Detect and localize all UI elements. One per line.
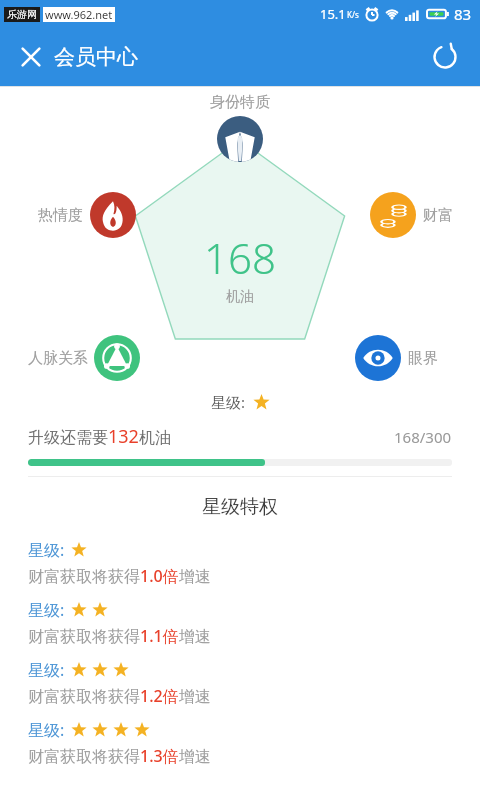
other: Close	[20, 46, 42, 68]
staticText: 星级特权	[202, 495, 278, 519]
button[interactable]: Close	[14, 38, 144, 76]
staticText: 身份特质	[210, 93, 270, 112]
button[interactable]: 星级:	[0, 597, 480, 657]
staticText: 星级:	[28, 599, 65, 621]
staticText: 财富获取将获得1.1倍增速	[28, 625, 211, 647]
button[interactable]: 星级:	[0, 657, 480, 717]
staticText: 星级:	[28, 719, 65, 741]
staticText: 眼界	[408, 349, 438, 368]
staticText: 人脉关系	[28, 349, 88, 368]
staticText: 机油	[226, 288, 254, 306]
staticText: 财富	[423, 206, 453, 225]
staticText: 15.1	[320, 5, 346, 23]
staticText: 168/300	[394, 427, 452, 447]
button[interactable]: Refresh	[426, 38, 464, 76]
staticText: 星级:	[28, 659, 65, 681]
staticText: 83	[454, 4, 472, 24]
staticText: 热情度	[38, 206, 83, 225]
staticText: 乐游网	[7, 8, 37, 21]
staticText: 星级:	[211, 392, 246, 412]
staticText: 168	[204, 229, 276, 286]
staticText: 财富获取将获得1.0倍增速	[28, 565, 211, 587]
staticText: 升级还需要132机油	[28, 424, 171, 449]
staticText: 财富获取将获得1.3倍增速	[28, 745, 211, 767]
button[interactable]: 星级:	[0, 717, 480, 777]
staticText: 会员中心	[54, 44, 138, 70]
button[interactable]: 星级:	[0, 537, 480, 597]
staticText: www.962.net	[45, 7, 113, 22]
staticText: 财富获取将获得1.2倍增速	[28, 685, 211, 707]
staticText: K/s	[347, 9, 359, 20]
staticText: 星级:	[28, 539, 65, 561]
